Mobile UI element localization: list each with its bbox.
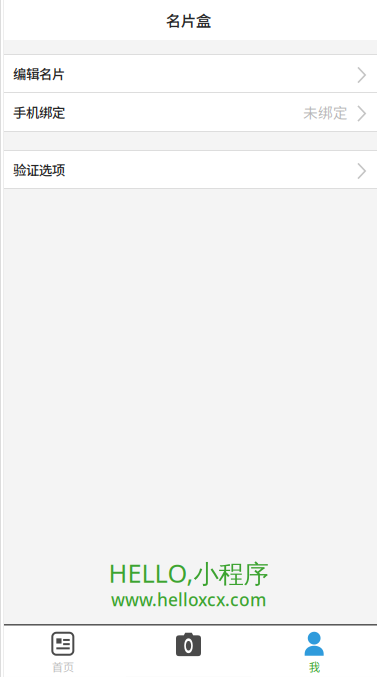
button[interactable]: 验证选项 <box>0 151 377 188</box>
staticText: HELLO,小程序 <box>108 556 268 590</box>
staticText: 手机绑定 <box>13 102 65 122</box>
staticText: 未绑定 <box>303 101 348 123</box>
button[interactable]: 编辑名片 <box>0 55 377 92</box>
button[interactable]: 我 <box>251 626 377 677</box>
staticText: 首页 <box>52 658 74 675</box>
staticText: 验证选项 <box>13 160 65 179</box>
staticText: 我 <box>309 658 320 675</box>
staticText: 编辑名片 <box>13 64 65 83</box>
staticText: 名片盒 <box>166 9 211 31</box>
button[interactable]: 拍照 <box>126 626 251 677</box>
button[interactable]: 手机绑定 <box>0 93 377 131</box>
button[interactable]: 首页 <box>0 626 126 677</box>
staticText: www.helloxcx.com <box>111 588 266 611</box>
